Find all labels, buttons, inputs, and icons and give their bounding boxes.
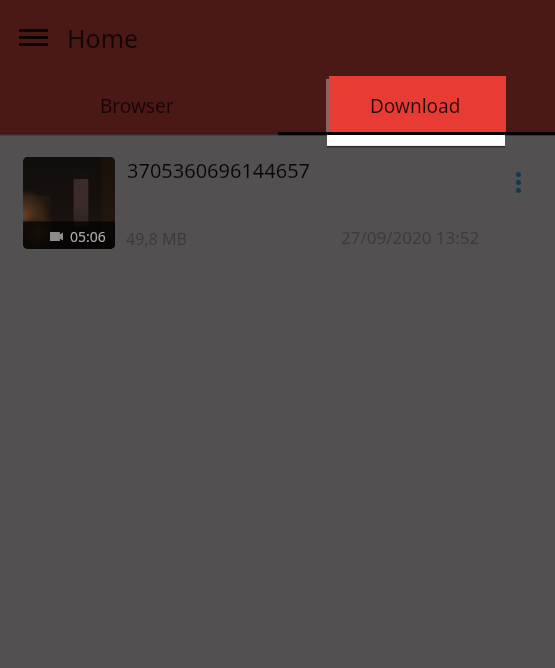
button[interactable]: Browser <box>0 76 278 134</box>
staticText: 3705360696144657 <box>127 157 311 184</box>
staticText: 49,8 MB <box>126 228 187 250</box>
button[interactable]: Download <box>329 76 506 132</box>
staticText: 05:06 <box>70 227 106 246</box>
staticText: Download <box>370 93 461 119</box>
staticText: Browser <box>100 93 174 119</box>
staticText: 27/09/2020 13:52 <box>341 226 480 249</box>
staticText: Home <box>67 21 139 55</box>
button[interactable]: Open navigation drawer <box>9 13 57 61</box>
button[interactable]: 05:06 <box>0 146 555 256</box>
button[interactable]: More options <box>496 160 541 205</box>
